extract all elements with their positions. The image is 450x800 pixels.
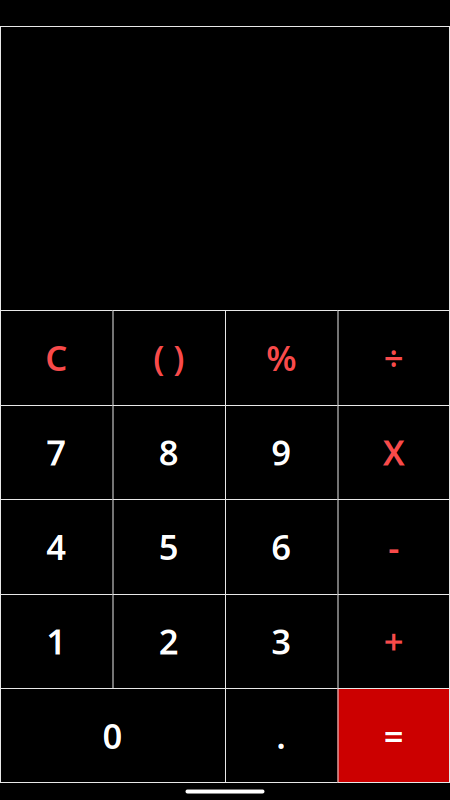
staticText: 0 — [102, 712, 122, 758]
button[interactable]: 4 — [0, 499, 112, 594]
staticText: 1 — [46, 618, 66, 664]
staticText: % — [266, 334, 296, 380]
staticText: X — [383, 429, 405, 475]
staticText: . — [276, 712, 286, 758]
staticText: 8 — [159, 429, 179, 475]
button[interactable]: 6 — [225, 499, 337, 594]
staticText: - — [388, 523, 399, 569]
staticText: 5 — [159, 523, 179, 569]
button[interactable]: % — [225, 310, 337, 405]
staticText: 9 — [271, 429, 291, 475]
staticText: ( ) — [153, 334, 184, 380]
staticText: 6 — [271, 523, 291, 569]
staticText: + — [384, 618, 404, 664]
button[interactable]: 1 — [0, 594, 112, 688]
staticText: 3 — [271, 618, 291, 664]
button[interactable]: 3 — [225, 594, 337, 688]
button[interactable]: 2 — [112, 594, 225, 688]
button[interactable]: ÷ — [337, 310, 450, 405]
button[interactable]: 7 — [0, 405, 112, 499]
button[interactable]: - — [337, 499, 450, 594]
button[interactable]: + — [337, 594, 450, 688]
staticText: 4 — [46, 523, 66, 569]
button[interactable]: 8 — [112, 405, 225, 499]
staticText: 7 — [46, 429, 66, 475]
staticText: C — [45, 334, 67, 380]
button[interactable]: = — [337, 688, 450, 783]
staticText: = — [384, 712, 404, 758]
button[interactable]: ( ) — [112, 310, 225, 405]
button[interactable]: 5 — [112, 499, 225, 594]
staticText: 2 — [159, 618, 179, 664]
staticText: ÷ — [384, 334, 404, 380]
button[interactable]: X — [337, 405, 450, 499]
button[interactable]: C — [0, 310, 112, 405]
button[interactable]: 9 — [225, 405, 337, 499]
button[interactable]: . — [225, 688, 337, 783]
button[interactable]: 0 — [0, 688, 225, 783]
